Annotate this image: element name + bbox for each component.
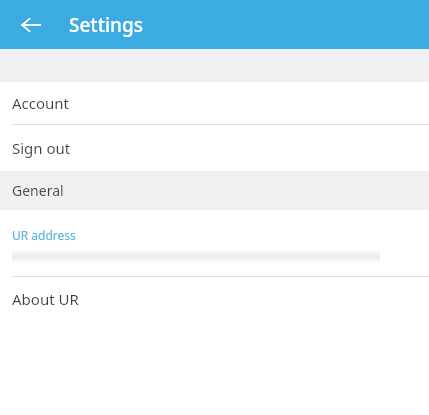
button[interactable]: UR address	[0, 210, 429, 276]
staticText: About UR	[12, 289, 79, 309]
button[interactable]: Back	[11, 5, 51, 45]
button[interactable]: Sign out	[0, 125, 429, 171]
staticText: Settings	[69, 12, 143, 38]
staticText: Account	[12, 93, 70, 113]
staticText: General	[12, 181, 64, 200]
staticText: Sign out	[12, 138, 71, 158]
button[interactable]: About UR	[0, 277, 429, 321]
button[interactable]: Account	[0, 82, 429, 124]
staticText: UR address	[12, 227, 76, 243]
